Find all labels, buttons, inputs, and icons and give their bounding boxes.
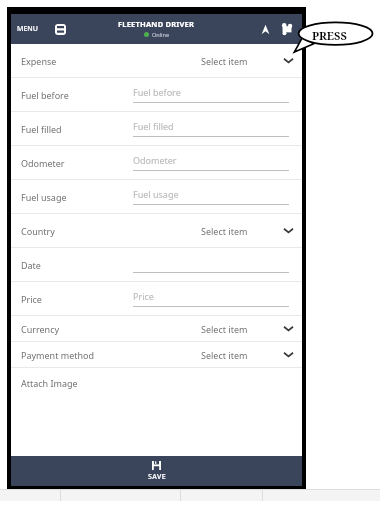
staticText: Expense	[21, 55, 57, 67]
staticText: Select item	[201, 349, 248, 361]
button[interactable]: Expense	[11, 44, 302, 77]
button[interactable]: SAVE	[11, 456, 302, 486]
staticText: Price	[133, 290, 154, 302]
staticText: Payment method	[21, 349, 95, 361]
staticText: Fuel usage	[133, 188, 179, 200]
button[interactable]: Odometer	[11, 146, 302, 179]
button[interactable]: Options	[280, 22, 294, 36]
button[interactable]: Fuel usage	[11, 180, 302, 213]
staticText: Odometer	[133, 154, 177, 166]
staticText: Select item	[201, 323, 248, 335]
staticText: Country	[21, 225, 55, 237]
staticText: FLEETHAND DRIVER	[118, 19, 195, 29]
staticText: Date	[21, 259, 133, 271]
staticText: Select item	[201, 225, 248, 237]
staticText: Odometer	[21, 157, 133, 169]
button[interactable]: Price	[11, 282, 302, 315]
staticText: Currency	[21, 323, 60, 335]
button[interactable]: Messages	[55, 24, 66, 35]
button[interactable]: Fuel before	[11, 78, 302, 111]
staticText: Attach Image	[21, 377, 78, 389]
button[interactable]: Currency	[11, 316, 302, 341]
staticText: SAVE	[148, 472, 166, 482]
button[interactable]: Country	[11, 214, 302, 247]
staticText: Online	[152, 31, 170, 38]
button[interactable]: Fuel filled	[11, 112, 302, 145]
button[interactable]: Navigation	[259, 23, 272, 36]
staticText: Fuel filled	[21, 123, 133, 135]
staticText: Price	[21, 293, 133, 305]
staticText: MENU	[17, 24, 38, 34]
button[interactable]: Attach Image	[11, 368, 302, 398]
staticText: Fuel before	[133, 86, 181, 98]
staticText: Fuel usage	[21, 191, 133, 203]
staticText: Select item	[201, 55, 248, 67]
button[interactable]: MENU	[17, 24, 38, 34]
button[interactable]: Payment method	[11, 342, 302, 367]
button[interactable]: Date	[11, 248, 302, 281]
staticText: Fuel before	[21, 89, 133, 101]
staticText: PRESS	[312, 28, 347, 43]
staticText: Fuel filled	[133, 120, 174, 132]
